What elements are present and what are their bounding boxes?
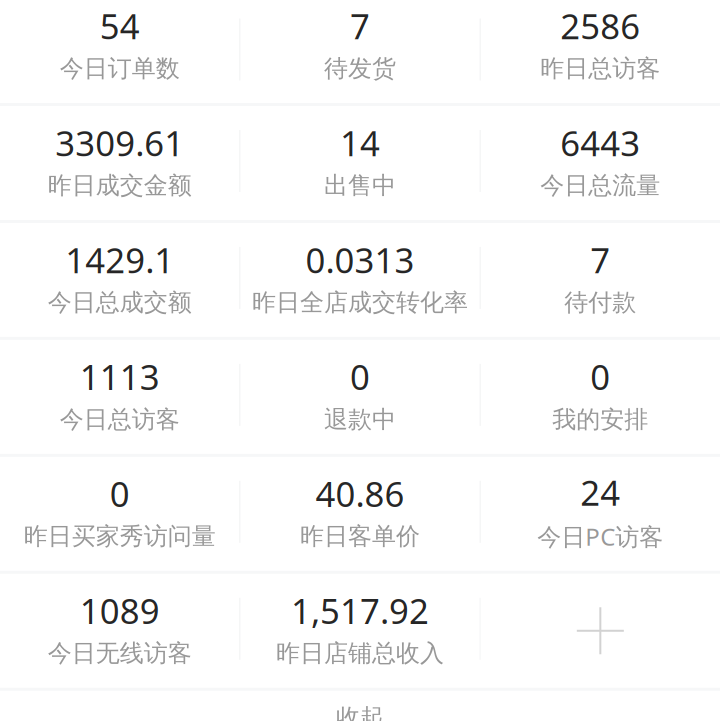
- staticText: 昨日总访客: [540, 54, 660, 83]
- staticText: 1113: [80, 354, 160, 400]
- staticText: 7: [590, 237, 610, 283]
- staticText: 3309.61: [55, 120, 184, 166]
- staticText: 今日无线访客: [48, 639, 192, 668]
- staticText: 7: [350, 3, 370, 49]
- button[interactable]: 6443: [481, 106, 720, 220]
- staticText: 今日总成交额: [48, 288, 192, 317]
- staticText: 昨日客单价: [300, 522, 420, 551]
- button[interactable]: 54: [0, 0, 239, 103]
- staticText: 今日总流量: [540, 171, 660, 200]
- button[interactable]: 3309.61: [0, 106, 239, 220]
- staticText: 0.0313: [305, 237, 414, 283]
- staticText: 40.86: [315, 471, 404, 517]
- staticText: 1429.1: [65, 237, 174, 283]
- button[interactable]: 14: [240, 106, 480, 220]
- staticText: 我的安排: [552, 405, 648, 434]
- staticText: 14: [340, 120, 380, 166]
- staticText: 24: [580, 469, 620, 515]
- button[interactable]: 1089: [0, 574, 239, 688]
- staticText: 待发货: [324, 54, 396, 83]
- staticText: 昨日买家秀访问量: [24, 522, 216, 551]
- button[interactable]: 收起: [0, 691, 720, 721]
- button[interactable]: 0: [0, 457, 239, 571]
- staticText: 0: [110, 471, 130, 517]
- staticText: 收起: [336, 703, 384, 721]
- button[interactable]: 1,517.92: [240, 574, 480, 688]
- staticText: 2586: [560, 3, 640, 49]
- button[interactable]: 0: [481, 340, 720, 454]
- staticText: 退款中: [324, 405, 396, 434]
- button[interactable]: 2586: [481, 0, 720, 103]
- staticText: 出售中: [324, 171, 396, 200]
- button[interactable]: 24: [481, 457, 720, 571]
- button[interactable]: 7: [481, 223, 720, 337]
- staticText: 54: [100, 3, 140, 49]
- button[interactable]: Add metric: [481, 574, 720, 688]
- button[interactable]: 40.86: [240, 457, 480, 571]
- staticText: 6443: [560, 120, 640, 166]
- staticText: 昨日全店成交转化率: [252, 288, 468, 317]
- staticText: 今日总访客: [60, 405, 180, 434]
- button[interactable]: 0: [240, 340, 480, 454]
- staticText: 0: [350, 354, 370, 400]
- button[interactable]: 0.0313: [240, 223, 480, 337]
- staticText: 待付款: [564, 288, 636, 317]
- staticText: 1,517.92: [291, 587, 429, 633]
- staticText: 今日订单数: [60, 54, 180, 83]
- staticText: 昨日成交金额: [48, 171, 192, 200]
- button[interactable]: 1429.1: [0, 223, 239, 337]
- staticText: 昨日店铺总收入: [276, 639, 444, 668]
- staticText: 今日PC访客: [537, 520, 663, 552]
- button[interactable]: 1113: [0, 340, 239, 454]
- button[interactable]: 7: [240, 0, 480, 103]
- staticText: 1089: [80, 587, 160, 633]
- staticText: 0: [590, 354, 610, 400]
